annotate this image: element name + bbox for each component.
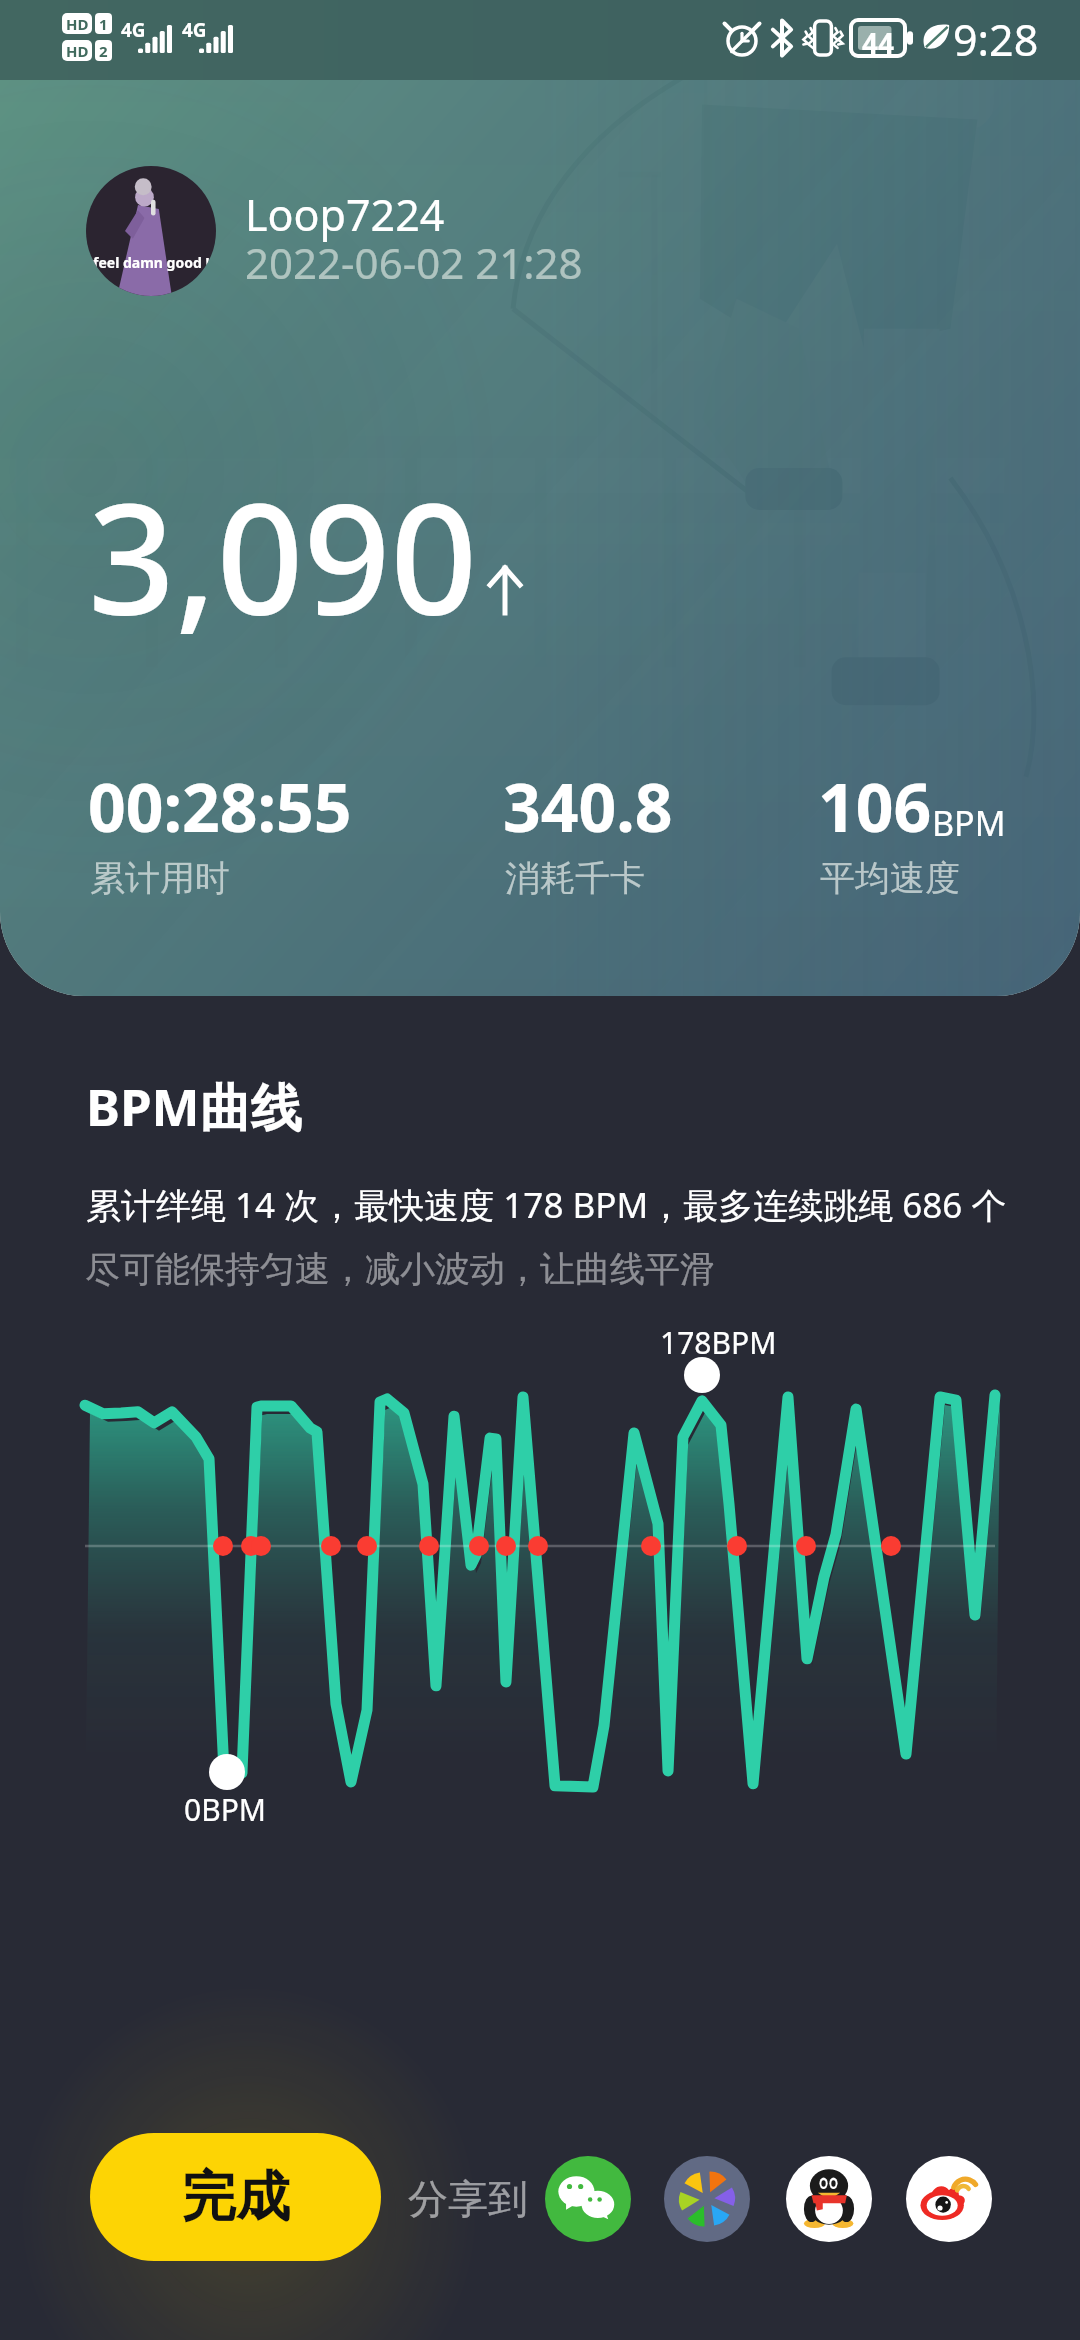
staticText: BPM bbox=[932, 800, 1006, 846]
staticText: 340.8 bbox=[503, 761, 673, 851]
button[interactable]: Share to Moments bbox=[664, 2156, 750, 2242]
staticText: 00:28:55 bbox=[88, 761, 352, 851]
staticText: 106 bbox=[818, 761, 932, 851]
staticText: 尽可能保持匀速，减小波动，让曲线平滑 bbox=[85, 1247, 715, 1291]
staticText: 累计用时 bbox=[90, 856, 230, 900]
button[interactable]: 完成 bbox=[90, 2133, 381, 2261]
staticText: HD bbox=[66, 41, 89, 61]
staticText: 44 bbox=[862, 24, 895, 62]
staticText: BPM曲线 bbox=[86, 1071, 302, 1141]
button[interactable]: Share to QQ bbox=[786, 2156, 872, 2242]
staticText: HD bbox=[66, 14, 89, 34]
staticText: feel damn good ! bbox=[93, 253, 210, 272]
staticText: 完成 bbox=[182, 2163, 290, 2231]
staticText: 9:28 bbox=[953, 10, 1039, 69]
button[interactable]: Share to Weibo bbox=[906, 2156, 992, 2242]
staticText: 1 bbox=[99, 14, 108, 34]
button[interactable]: Share to WeChat bbox=[545, 2156, 631, 2242]
staticText: 3,090 bbox=[88, 452, 478, 659]
staticText: 4G bbox=[121, 17, 146, 43]
staticText: 4G bbox=[182, 17, 207, 43]
staticText: 分享到 bbox=[408, 2174, 528, 2224]
staticText: Loop7224 bbox=[245, 185, 445, 244]
staticText: 2 bbox=[99, 41, 108, 61]
staticText: 0BPM bbox=[184, 1789, 267, 1830]
staticText: 累计绊绳 14 次，最快速度 178 BPM，最多连续跳绳 686 个 bbox=[86, 1181, 1007, 1229]
staticText: 2022-06-02 21:28 bbox=[245, 234, 583, 291]
staticText: 平均速度 bbox=[820, 856, 960, 900]
staticText: 消耗千卡 bbox=[505, 856, 645, 900]
staticText: 178BPM bbox=[660, 1322, 777, 1363]
